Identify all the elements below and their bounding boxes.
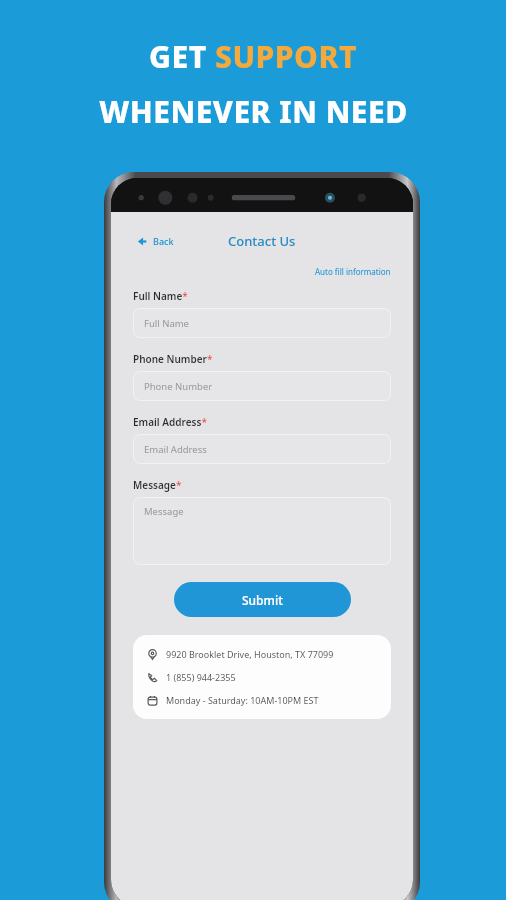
button[interactable]: Submit: [174, 582, 351, 617]
button[interactable]: Message: [133, 497, 391, 565]
staticText: Submit: [242, 592, 283, 608]
staticText: Phone Number: [144, 380, 213, 393]
staticText: Monday - Saturday: 10AM-10PM EST: [166, 694, 319, 706]
staticText: Full Name: [144, 317, 189, 330]
staticText: Message*: [133, 478, 182, 492]
staticText: Message: [144, 505, 184, 518]
staticText: 1 (855) 944-2355: [166, 671, 236, 683]
button[interactable]: Email Address: [133, 434, 391, 464]
staticText: 9920 Brooklet Drive, Houston, TX 77099: [166, 648, 334, 660]
staticText: WHENEVER IN NEED: [99, 91, 408, 132]
button[interactable]: Full Name: [133, 308, 391, 338]
staticText: Back: [153, 235, 174, 247]
staticText: Email Address*: [133, 415, 207, 429]
button[interactable]: Auto fill information: [313, 264, 393, 279]
button[interactable]: Back: [133, 232, 178, 250]
button[interactable]: Phone Number: [133, 371, 391, 401]
staticText: Full Name*: [133, 289, 188, 303]
staticText: Email Address: [144, 443, 207, 456]
staticText: GET SUPPORT: [149, 36, 357, 77]
staticText: Phone Number*: [133, 352, 213, 366]
staticText: Contact Us: [228, 232, 296, 250]
